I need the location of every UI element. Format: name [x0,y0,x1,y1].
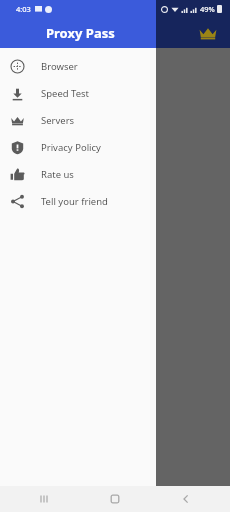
staticText: Servers [41,114,75,127]
button[interactable]: Tell your friend [0,188,156,215]
staticText: Privacy Policy [41,141,101,154]
button[interactable]: Speed Test [0,80,156,107]
button[interactable]: Back [176,489,196,509]
staticText: Watching Video [128,344,194,356]
staticText: 49% [200,4,215,14]
button[interactable]: Servers [0,107,156,134]
button[interactable]: Privacy Policy [0,134,156,161]
staticText: 4:03 [16,4,31,14]
button[interactable]: Premium [198,23,218,43]
button[interactable]: Rate us [0,161,156,188]
staticText: Speed Test [41,87,90,100]
staticText: Proxy Pass [46,24,115,42]
button[interactable]: Recents [34,489,54,509]
button[interactable]: Home [105,489,125,509]
staticText: Tell your friend [41,195,108,208]
staticText: Browser [41,60,78,73]
button[interactable]: Browser [0,53,156,80]
staticText: Choose Country [133,419,201,431]
staticText: Rate us [41,168,74,181]
